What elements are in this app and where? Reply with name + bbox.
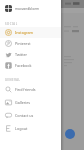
staticText: Galleries (15, 100, 31, 105)
button[interactable]: Instagram (0, 27, 61, 38)
staticText: Twitter (15, 52, 28, 57)
button[interactable]: maxvandbloem (0, 0, 61, 16)
button[interactable]: Contact us (0, 109, 61, 122)
staticText: maxvandbloem (15, 6, 40, 10)
button[interactable]: Pinterest (0, 38, 61, 49)
staticText: GENERAL (5, 78, 21, 82)
staticText: Contact us (15, 113, 34, 118)
staticText: SOCIAL (5, 22, 18, 26)
staticText: Facebook (15, 63, 32, 68)
staticText: Find friends (15, 87, 36, 92)
button[interactable]: Twitter (0, 49, 61, 60)
staticText: Instagram (15, 30, 33, 35)
staticText: Logout (15, 126, 28, 131)
button[interactable]: Find friends (0, 83, 61, 96)
button[interactable]: Compose (65, 129, 75, 139)
staticText: Pinterest (15, 41, 31, 46)
button[interactable]: Galleries (0, 96, 61, 109)
button[interactable]: Facebook (0, 60, 61, 71)
button[interactable]: Logout (0, 122, 61, 135)
